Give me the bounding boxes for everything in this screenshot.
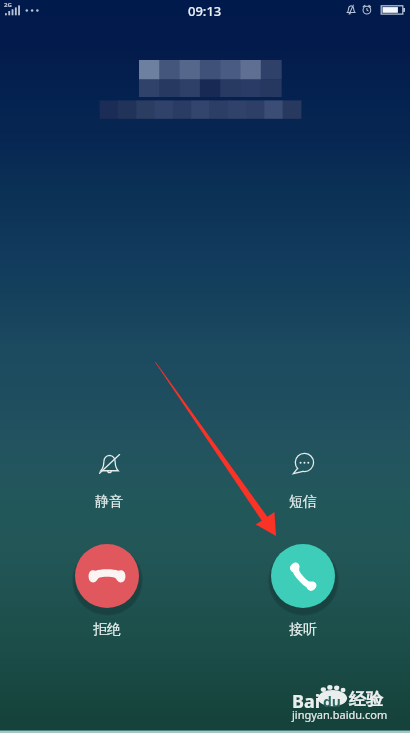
staticText: 静音: [95, 493, 123, 511]
staticText: 09:13: [188, 2, 222, 20]
staticText: 2G: [4, 1, 12, 9]
staticText: 经验: [349, 689, 383, 710]
staticText: Bai: [292, 689, 321, 714]
button[interactable]: 拒绝: [69, 544, 145, 639]
staticText: du: [323, 692, 341, 711]
staticText: jingyan.baidu.com: [292, 707, 388, 722]
button[interactable]: 短信: [266, 447, 340, 511]
staticText: 短信: [289, 493, 317, 511]
staticText: 接听: [289, 621, 317, 639]
button[interactable]: 接听: [265, 544, 341, 639]
button[interactable]: 静音: [72, 447, 146, 511]
staticText: 拒绝: [93, 621, 121, 639]
